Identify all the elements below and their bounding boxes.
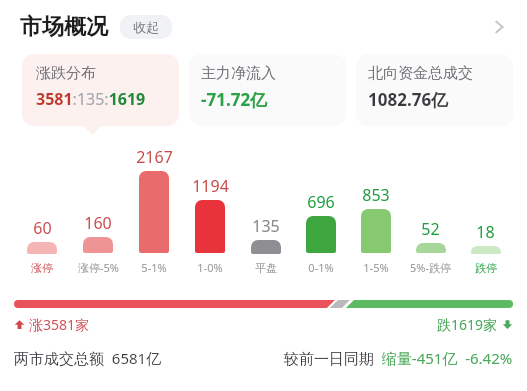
- staticText: 5%-跌停: [410, 260, 451, 275]
- staticText: 60: [33, 217, 52, 239]
- button[interactable]: 696: [293, 191, 348, 275]
- staticText: 853: [362, 184, 390, 206]
- button[interactable]: 18: [458, 221, 513, 275]
- button[interactable]: 52: [403, 218, 458, 275]
- staticText: 市场概况: [20, 13, 108, 41]
- staticText: 主力净流入: [201, 64, 276, 83]
- button[interactable]: 853: [348, 184, 403, 275]
- staticText: 涨跌分布: [36, 64, 96, 83]
- button[interactable]: 1194: [182, 175, 238, 275]
- staticText: -71.72亿: [201, 88, 268, 111]
- staticText: 696: [307, 191, 335, 213]
- staticText: 1082.76亿: [368, 88, 449, 111]
- button[interactable]: 北向资金总成交: [356, 54, 513, 126]
- staticText: 北向资金总成交: [368, 64, 473, 83]
- button[interactable]: 涨跌分布: [22, 54, 179, 126]
- staticText: 较前一日同期 缩量-451亿 -6.42%: [284, 348, 513, 368]
- staticText: 135: [252, 215, 280, 237]
- staticText: 1-5%: [363, 260, 389, 275]
- staticText: 跌1619家: [437, 315, 498, 334]
- staticText: 平盘: [255, 261, 277, 275]
- staticText: 5-1%: [141, 260, 167, 275]
- staticText: 18: [476, 221, 495, 243]
- button[interactable]: More: [479, 7, 519, 47]
- staticText: 0-1%: [308, 260, 334, 275]
- staticText: 2167: [136, 146, 173, 168]
- staticText: 涨停: [31, 261, 53, 275]
- staticText: 两市成交总额 6581亿: [14, 348, 162, 368]
- staticText: 涨3581家: [29, 315, 90, 334]
- staticText: 1-0%: [197, 260, 223, 275]
- button[interactable]: 60: [14, 217, 70, 275]
- button[interactable]: 收起: [120, 15, 172, 39]
- button[interactable]: 135: [238, 215, 293, 275]
- button[interactable]: 主力净流入: [189, 54, 346, 126]
- staticText: 3581:135:1619: [36, 88, 146, 110]
- button[interactable]: 160: [70, 212, 126, 275]
- staticText: 涨停-5%: [78, 260, 119, 275]
- staticText: 跌停: [475, 261, 497, 275]
- staticText: 1194: [192, 175, 229, 197]
- staticText: 160: [84, 212, 112, 234]
- staticText: 收起: [133, 19, 159, 35]
- staticText: 52: [421, 218, 440, 240]
- button[interactable]: 2167: [126, 146, 182, 275]
